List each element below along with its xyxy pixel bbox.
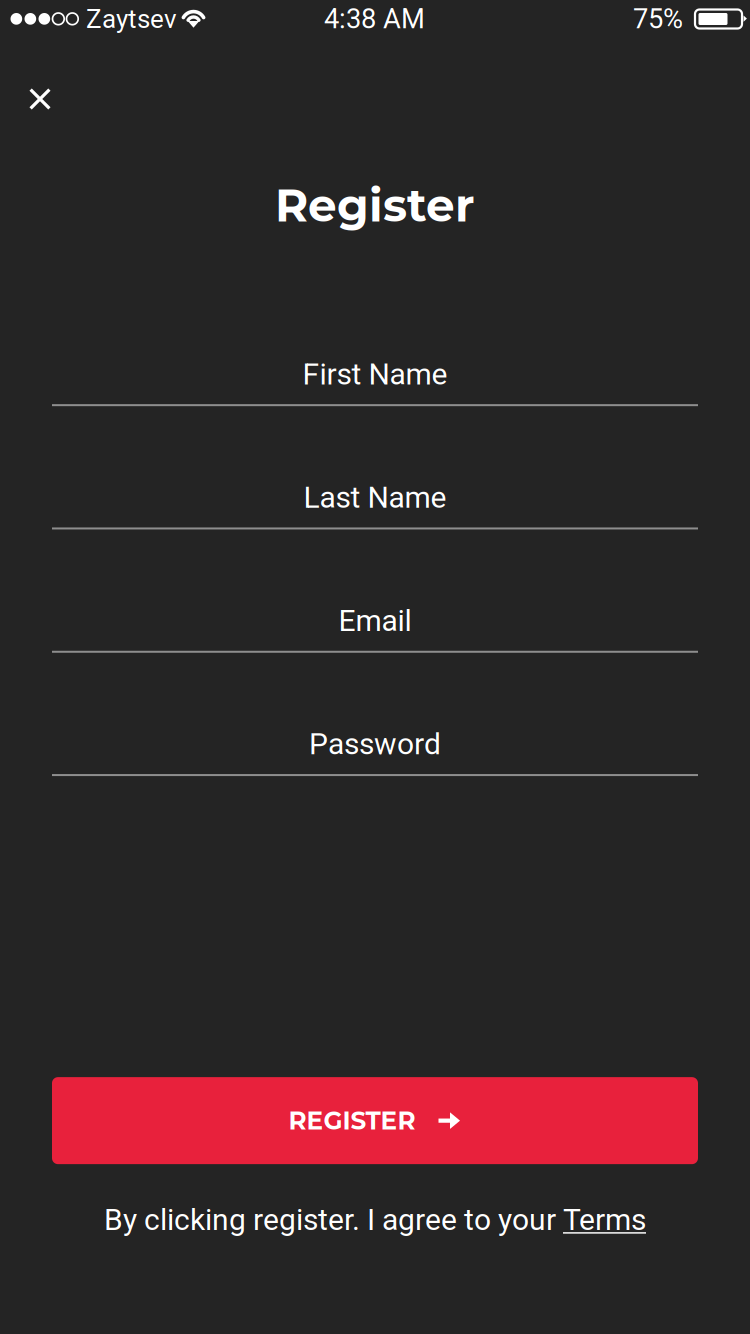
staticText: Register: [275, 178, 475, 233]
staticText: 75%: [633, 3, 683, 35]
staticText: Last Name: [303, 480, 446, 515]
staticText: Email: [338, 603, 411, 638]
staticText: First Name: [302, 357, 447, 392]
button[interactable]: Close: [11, 72, 69, 126]
staticText: 4:38 AM: [324, 3, 425, 35]
staticText: REGISTER: [288, 1106, 415, 1136]
staticText: Terms: [563, 1202, 646, 1237]
staticText: By clicking register. I agree to your: [104, 1202, 563, 1237]
button[interactable]: REGISTER: [52, 1077, 698, 1164]
staticText: Zaytsev: [86, 4, 177, 34]
button[interactable]: By clicking register. I agree to your: [104, 1202, 646, 1237]
staticText: Password: [309, 726, 441, 762]
